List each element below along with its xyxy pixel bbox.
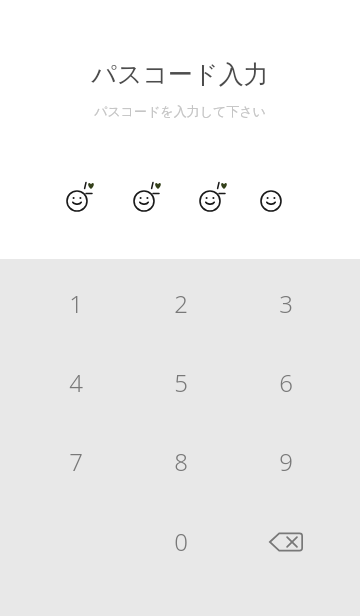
staticText: パスコード入力	[0, 59, 360, 90]
staticText: 8	[174, 445, 188, 478]
button[interactable]: 2	[128, 264, 233, 343]
staticText: パスコードを入力して下さい	[0, 103, 360, 119]
button[interactable]: 4	[23, 343, 128, 422]
staticText: 2	[174, 287, 188, 320]
staticText: 4	[69, 366, 83, 399]
staticText: 5	[174, 366, 188, 399]
staticText: 3	[279, 287, 293, 320]
staticText: 7	[69, 445, 83, 478]
staticText: 9	[279, 445, 293, 478]
button[interactable]: Backspace	[233, 502, 338, 581]
button[interactable]: 8	[128, 422, 233, 501]
button[interactable]: 3	[233, 264, 338, 343]
staticText: 0	[174, 525, 188, 558]
button[interactable]: 6	[233, 343, 338, 422]
button[interactable]: 9	[233, 422, 338, 501]
button[interactable]: 1	[23, 264, 128, 343]
staticText: 6	[279, 366, 293, 399]
button[interactable]: 7	[23, 422, 128, 501]
staticText: 1	[69, 287, 83, 320]
button[interactable]: 0	[128, 502, 233, 581]
button[interactable]: 5	[128, 343, 233, 422]
